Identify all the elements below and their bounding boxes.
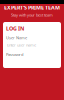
- staticText: Enter user name: [7, 42, 36, 48]
- staticText: User Name: [6, 35, 27, 40]
- staticText: LOG IN: [6, 25, 24, 32]
- staticText: Stay with your best team: [11, 12, 53, 18]
- staticText: Password: [6, 52, 23, 57]
- staticText: EXPERT'S PRIME TEAM: [4, 4, 60, 11]
